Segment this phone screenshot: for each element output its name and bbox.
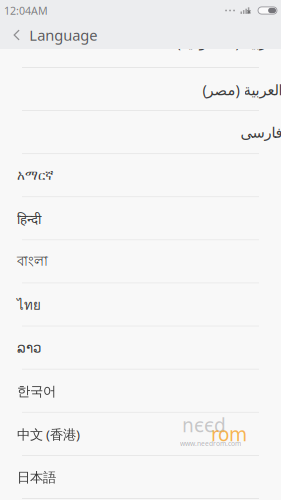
staticText: فارسى — [240, 124, 281, 141]
staticText: rom — [211, 424, 247, 446]
button[interactable]: العربية (السعودية) — [0, 25, 281, 68]
staticText: 한국어 — [17, 383, 56, 399]
button[interactable]: ລາວ — [0, 327, 281, 370]
button[interactable]: العربية (مصر) — [0, 68, 281, 111]
staticText: አማርኛ — [17, 169, 53, 182]
button[interactable]: 한국어 — [0, 370, 281, 413]
staticText: 日本語 — [17, 469, 56, 486]
staticText: 中文 (香港) — [17, 425, 80, 443]
staticText: ລາວ — [17, 341, 41, 356]
staticText: nєєd — [182, 415, 226, 437]
staticText: हिन्दी — [17, 210, 41, 228]
staticText: ไทย — [17, 295, 41, 315]
button[interactable]: ไทย — [0, 283, 281, 327]
button[interactable]: فارسى — [0, 111, 281, 154]
button[interactable]: हिन्दी — [0, 197, 281, 240]
staticText: বাংলা — [17, 253, 48, 271]
button[interactable]: 中文 (香港) — [0, 413, 281, 456]
staticText: العربية (السعودية) — [176, 32, 281, 51]
staticText: العربية (مصر) — [202, 80, 281, 99]
staticText: 12:04AM — [4, 3, 48, 18]
staticText: www.needrom.com — [180, 439, 241, 448]
button[interactable]: Language — [0, 21, 281, 49]
button[interactable]: 日本語 — [0, 456, 281, 499]
staticText: Language — [29, 25, 97, 45]
button[interactable]: አማርኛ — [0, 154, 281, 197]
button[interactable]: বাংলা — [0, 240, 281, 283]
